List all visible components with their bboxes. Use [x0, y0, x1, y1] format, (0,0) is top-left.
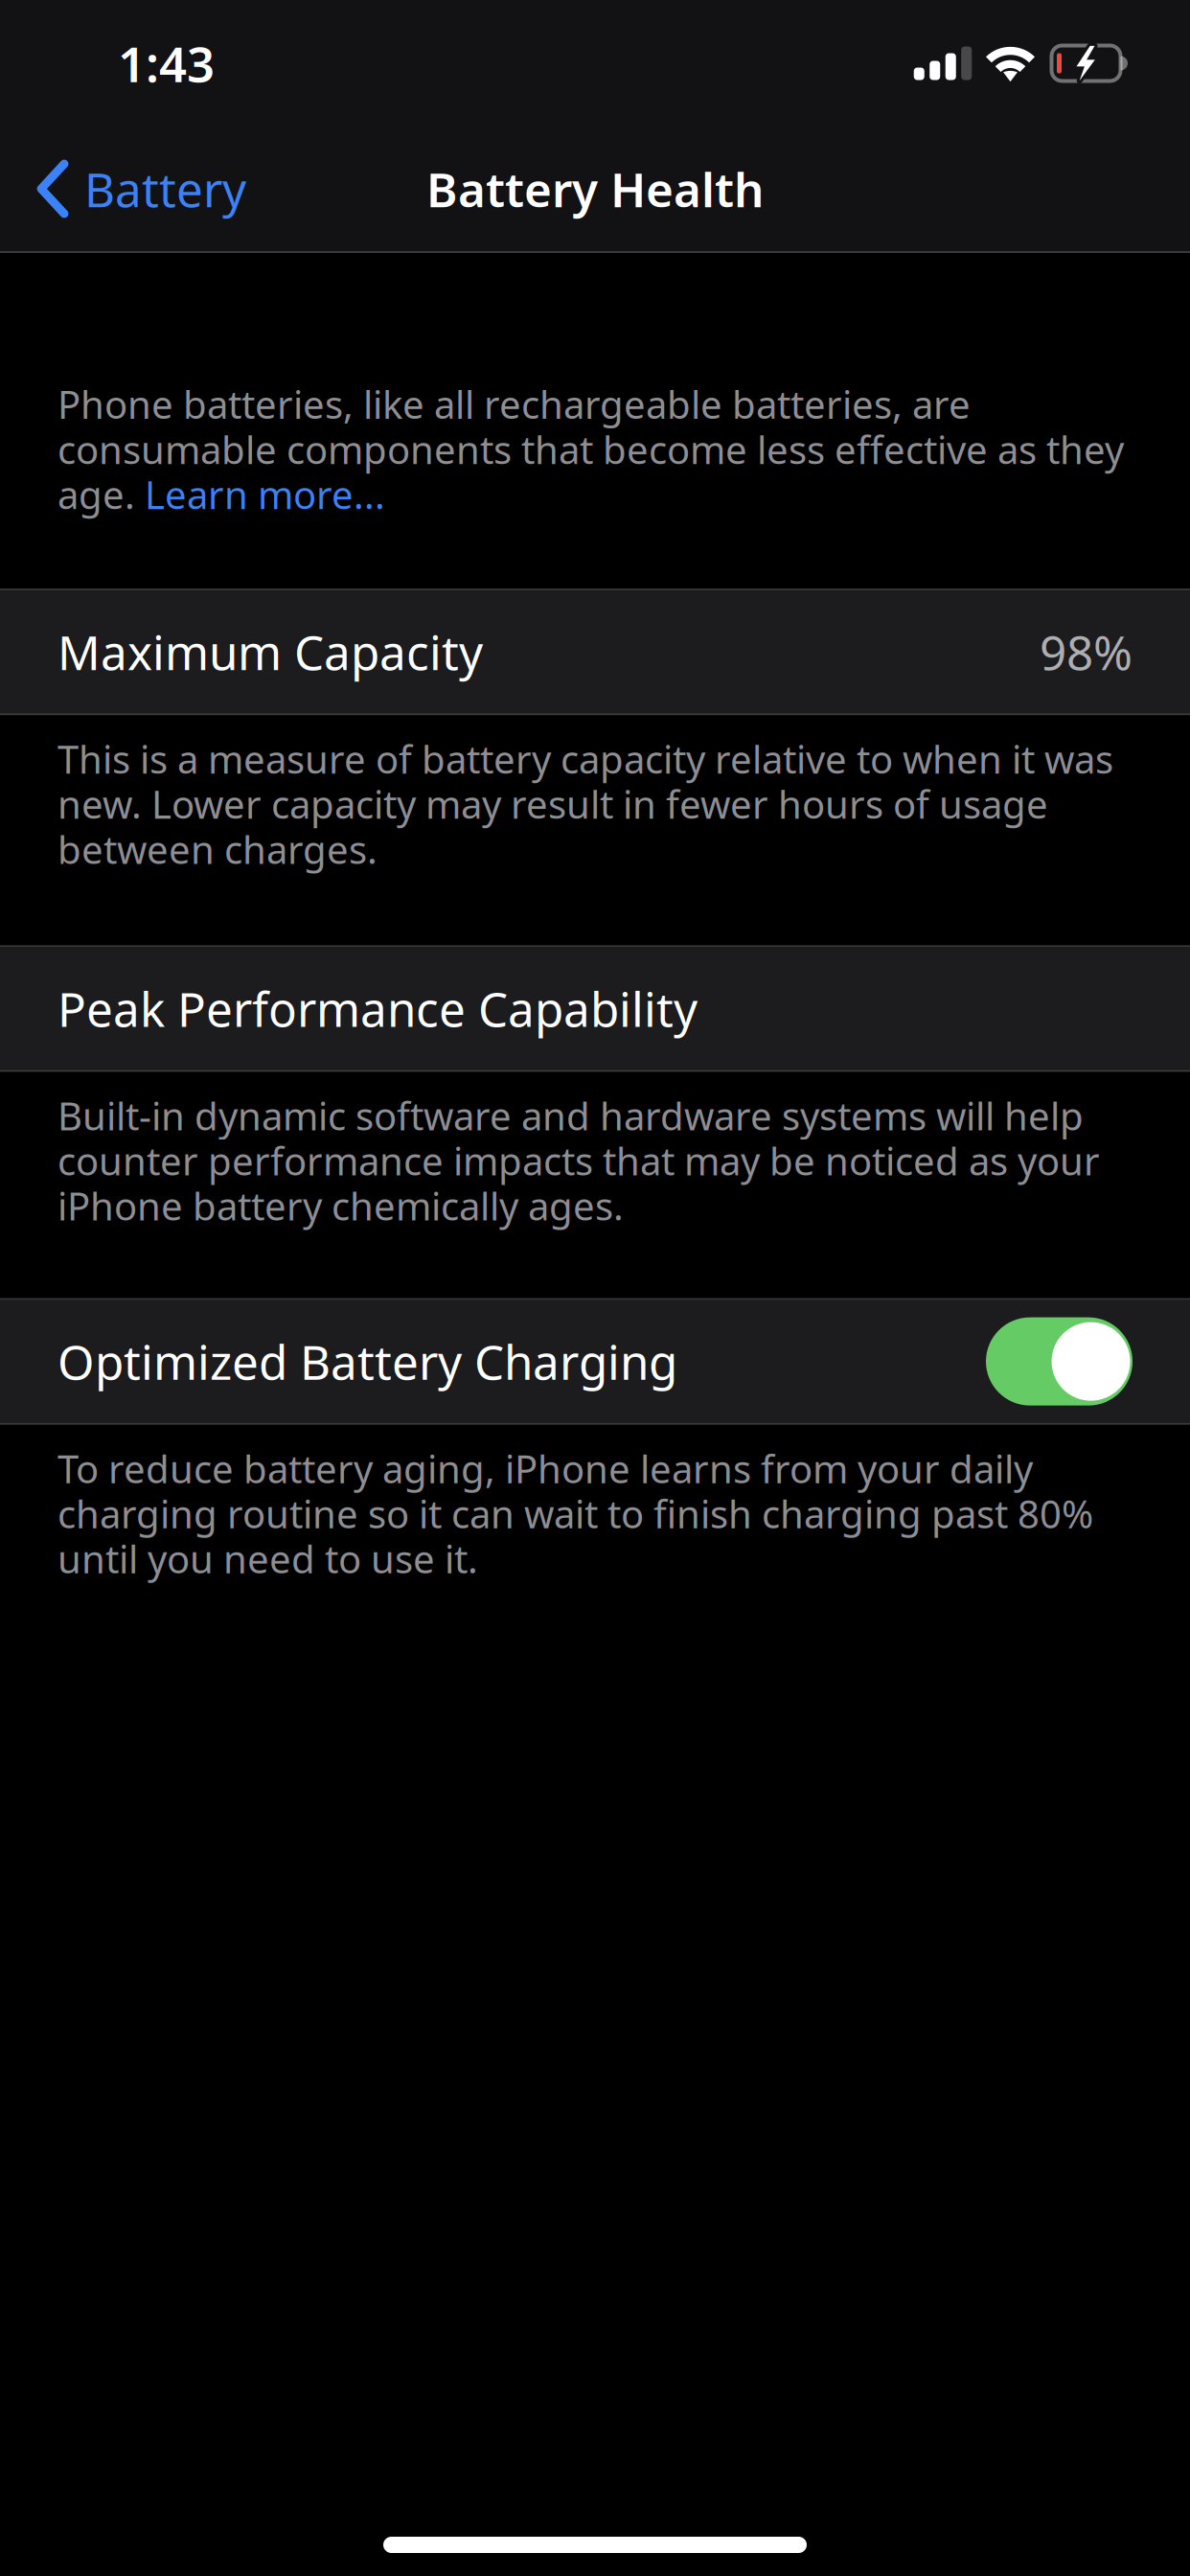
button[interactable]: Maximum Capacity [0, 591, 1190, 713]
staticText: Battery [84, 157, 246, 221]
staticText: Built-in dynamic software and hardware s… [57, 1093, 1100, 1228]
staticText: 1:43 [118, 30, 215, 96]
button[interactable]: Optimized Battery Charging [0, 1300, 1190, 1423]
button[interactable]: Battery [0, 126, 267, 251]
button[interactable]: Phone batteries, like all rechargeable b… [0, 381, 1190, 517]
staticText: Battery Health [426, 157, 764, 221]
button[interactable]: Optimized Battery Charging, on [986, 1317, 1133, 1405]
staticText: Optimized Battery Charging [57, 1329, 677, 1394]
staticText: Maximum Capacity [57, 620, 483, 684]
staticText: To reduce battery aging, iPhone learns f… [57, 1446, 1093, 1581]
staticText: 98% [1040, 620, 1133, 684]
button[interactable]: Peak Performance Capability [0, 947, 1190, 1070]
staticText: This is a measure of battery capacity re… [57, 736, 1113, 872]
staticText: Phone batteries, like all rechargeable b… [57, 381, 1124, 517]
staticText: Peak Performance Capability [57, 976, 698, 1041]
